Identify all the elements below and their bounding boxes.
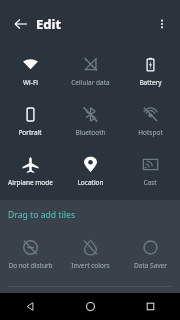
staticText: Airplane mode [8, 178, 53, 187]
button[interactable]: Back [6, 9, 36, 39]
button[interactable]: Bluetooth [60, 98, 120, 137]
button[interactable]: More options [148, 10, 176, 38]
staticText: Portrait [18, 128, 42, 137]
staticText: Cellular data [71, 78, 110, 87]
button[interactable]: Wi-Fi [0, 48, 60, 87]
button[interactable]: Hotspot [120, 98, 180, 137]
staticText: Battery [139, 78, 162, 87]
staticText: Bluetooth [75, 128, 106, 137]
button[interactable]: Do not disturb [0, 231, 60, 270]
button[interactable]: Recent apps [120, 293, 180, 320]
button[interactable]: Cast [120, 148, 180, 187]
staticText: Invert colors [71, 261, 110, 270]
staticText: Wi-Fi [23, 78, 38, 87]
button[interactable]: Invert colors [60, 231, 120, 270]
staticText: Cast [143, 178, 157, 187]
staticText: Location [77, 178, 104, 187]
button[interactable]: Battery [120, 48, 180, 87]
button[interactable]: Data Saver [120, 231, 180, 270]
button[interactable]: Cellular data [60, 48, 120, 87]
staticText: Data Saver [134, 261, 167, 270]
button[interactable]: Location [60, 148, 120, 187]
button[interactable]: Airplane mode [0, 148, 60, 187]
button[interactable]: Back [0, 293, 60, 320]
staticText: Drag to add tiles [8, 209, 76, 221]
button[interactable]: Home [60, 293, 120, 320]
button[interactable]: Portrait [0, 98, 60, 137]
staticText: Do not disturb [8, 261, 53, 270]
staticText: Hotspot [138, 128, 163, 137]
staticText: Edit [36, 15, 62, 33]
